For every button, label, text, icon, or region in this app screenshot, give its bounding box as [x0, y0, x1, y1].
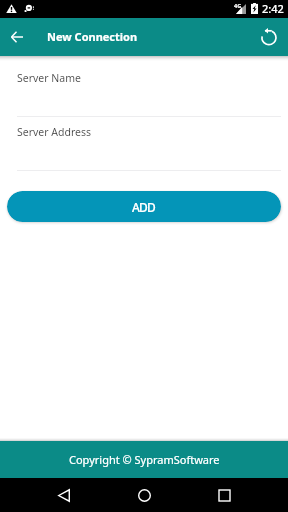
button[interactable]: Server Name: [17, 63, 281, 117]
staticText: ADD: [132, 199, 156, 215]
button[interactable]: Home: [128, 479, 160, 511]
staticText: Copyright © SypramSoftware: [69, 452, 220, 467]
staticText: New Connection: [47, 29, 138, 44]
button[interactable]: Server Address: [17, 117, 281, 171]
button[interactable]: Back: [0, 20, 34, 54]
staticText: Server Address: [17, 125, 92, 139]
staticText: 4G: [234, 2, 242, 9]
staticText: 2:42: [262, 1, 284, 16]
staticText: Server Name: [17, 71, 81, 85]
button[interactable]: ADD: [7, 191, 281, 222]
button[interactable]: Recents: [208, 479, 240, 511]
button[interactable]: Reset: [252, 20, 286, 54]
button[interactable]: Back: [48, 479, 80, 511]
